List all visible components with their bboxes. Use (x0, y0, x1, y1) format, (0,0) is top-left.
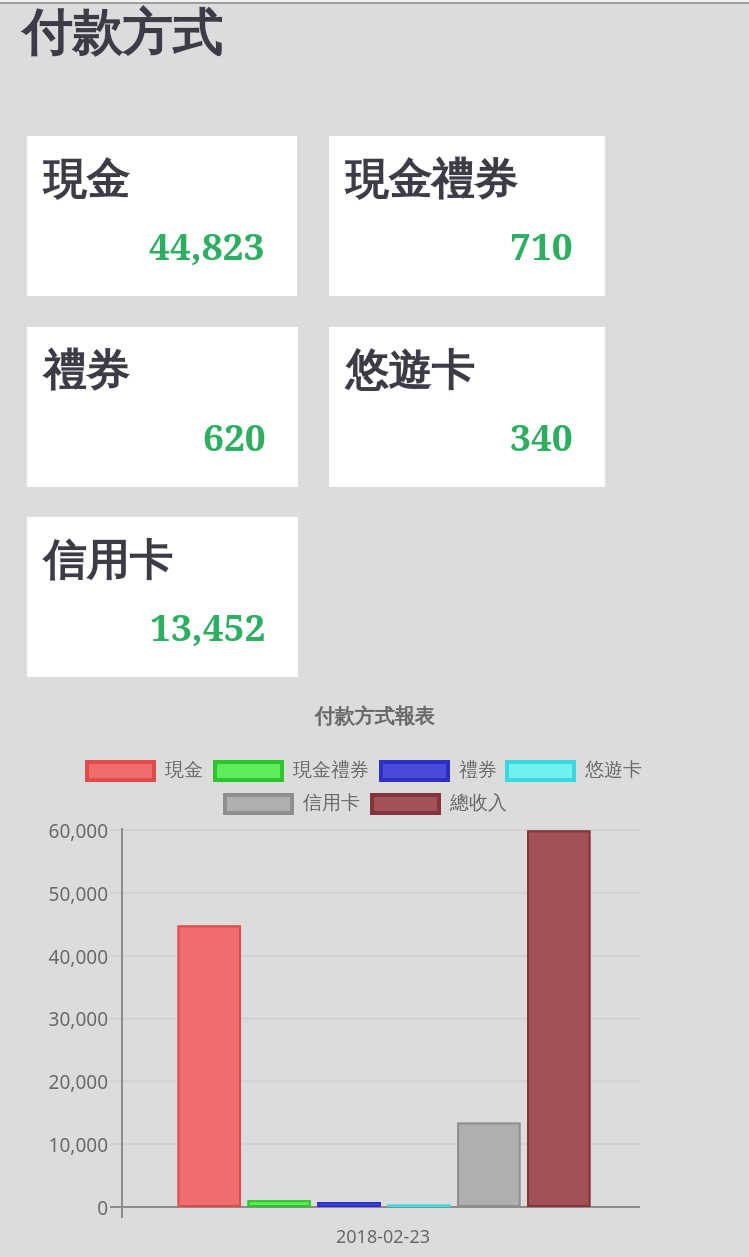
button[interactable]: 信用卡 (27, 517, 298, 677)
staticText: 付款方式 (22, 2, 222, 65)
staticText: 13,452 (150, 601, 266, 651)
button[interactable]: 悠遊卡 (329, 327, 605, 487)
button[interactable] (87, 762, 154, 780)
staticText: 0 (0, 1195, 108, 1221)
staticText: 10,000 (0, 1132, 108, 1158)
staticText: 2018-02-23 (17, 1224, 749, 1249)
staticText: 現金禮券 (293, 758, 369, 782)
staticText: 禮券 (459, 758, 497, 782)
staticText: 340 (510, 411, 573, 461)
button[interactable] (215, 762, 282, 780)
staticText: 現金禮券 (345, 153, 517, 207)
button[interactable]: 禮券 (27, 327, 298, 487)
staticText: 總收入 (450, 791, 507, 815)
staticText: 710 (510, 220, 573, 270)
staticText: 現金 (165, 758, 203, 782)
button[interactable] (372, 795, 439, 813)
staticText: 44,823 (149, 220, 265, 270)
button[interactable] (381, 762, 448, 780)
staticText: 60,000 (0, 818, 108, 844)
button[interactable]: 現金 (27, 136, 297, 296)
button[interactable]: 現金禮券 (329, 136, 605, 296)
button[interactable] (507, 762, 574, 780)
staticText: 信用卡 (303, 791, 360, 815)
staticText: 40,000 (0, 944, 108, 970)
staticText: 付款方式報表 (0, 704, 749, 729)
staticText: 20,000 (0, 1069, 108, 1095)
staticText: 禮券 (43, 344, 129, 398)
staticText: 現金 (43, 153, 129, 207)
staticText: 50,000 (0, 881, 108, 907)
staticText: 30,000 (0, 1006, 108, 1032)
staticText: 620 (203, 411, 266, 461)
staticText: 悠遊卡 (345, 344, 474, 398)
button[interactable] (225, 795, 292, 813)
staticText: 信用卡 (43, 534, 172, 588)
staticText: 悠遊卡 (585, 758, 642, 782)
